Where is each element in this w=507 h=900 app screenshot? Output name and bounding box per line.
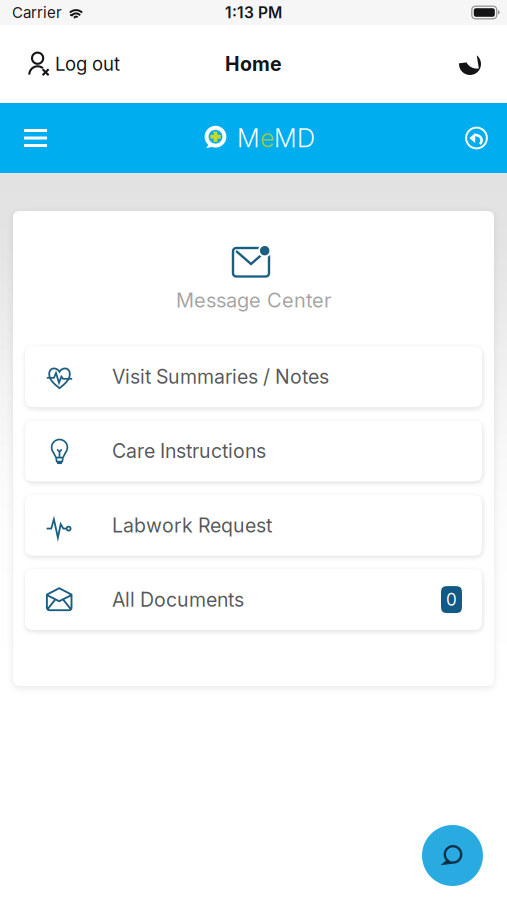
button[interactable]: All Documents bbox=[25, 569, 482, 630]
button[interactable]: Dark mode bbox=[435, 25, 507, 103]
staticText: All Documents bbox=[112, 588, 244, 611]
staticText: Care Instructions bbox=[112, 439, 266, 463]
staticText: e bbox=[260, 123, 274, 153]
staticText: Log out bbox=[55, 53, 120, 75]
button[interactable]: Menu bbox=[0, 103, 71, 173]
button[interactable]: Refresh bbox=[447, 103, 507, 173]
staticText: 1:13 PM bbox=[225, 3, 282, 22]
button[interactable]: Log out bbox=[0, 25, 132, 103]
staticText: Labwork Request bbox=[112, 513, 272, 537]
staticText: Message Center bbox=[176, 288, 331, 312]
button[interactable]: Labwork Request bbox=[25, 495, 482, 556]
button[interactable]: Care Instructions bbox=[25, 420, 482, 481]
staticText: M bbox=[237, 123, 260, 153]
staticText: Home bbox=[225, 52, 282, 76]
staticText: Visit Summaries / Notes bbox=[112, 365, 329, 388]
button[interactable]: Chat bbox=[422, 825, 483, 886]
staticText: Carrier bbox=[12, 3, 62, 21]
staticText: MD bbox=[274, 123, 315, 153]
button[interactable]: Visit Summaries / Notes bbox=[25, 346, 482, 407]
staticText: 0 bbox=[446, 589, 457, 610]
